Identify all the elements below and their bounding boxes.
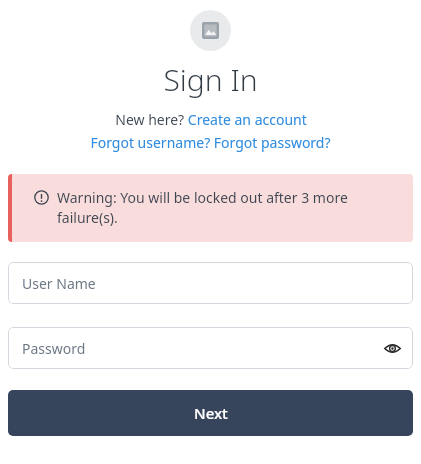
- staticText: User Name: [22, 274, 96, 293]
- button[interactable]: Show password: [371, 327, 413, 369]
- staticText: Next: [194, 403, 228, 423]
- staticText: Sign In: [163, 59, 258, 100]
- button[interactable]: Forgot username? Forgot password?: [0, 133, 421, 152]
- staticText: Password: [22, 339, 86, 358]
- staticText: New here? Create an account: [115, 110, 307, 129]
- button[interactable]: User Name: [8, 262, 413, 304]
- staticText: Forgot username? Forgot password?: [90, 133, 331, 152]
- button[interactable]: Next: [8, 390, 413, 436]
- staticText: Warning: You will be locked out after 3 …: [57, 188, 399, 227]
- button[interactable]: New here? Create an account: [0, 110, 421, 129]
- button[interactable]: Password: [8, 327, 413, 369]
